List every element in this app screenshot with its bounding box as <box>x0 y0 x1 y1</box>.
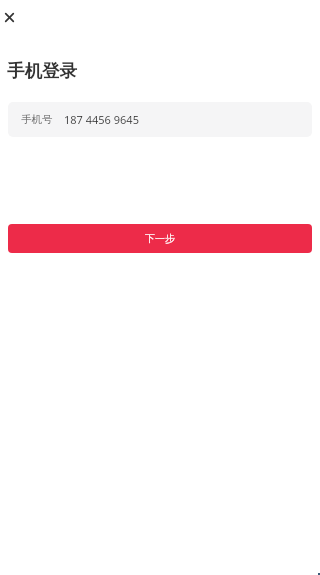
staticText: 手机号 <box>21 113 53 126</box>
button[interactable]: Close <box>0 4 22 30</box>
staticText: 187 4456 9645 <box>64 112 139 127</box>
staticText: 下一步 <box>145 232 175 245</box>
button[interactable]: 手机号 <box>8 102 312 137</box>
button[interactable]: 下一步 <box>8 224 312 253</box>
staticText: 手机登录 <box>7 60 77 82</box>
